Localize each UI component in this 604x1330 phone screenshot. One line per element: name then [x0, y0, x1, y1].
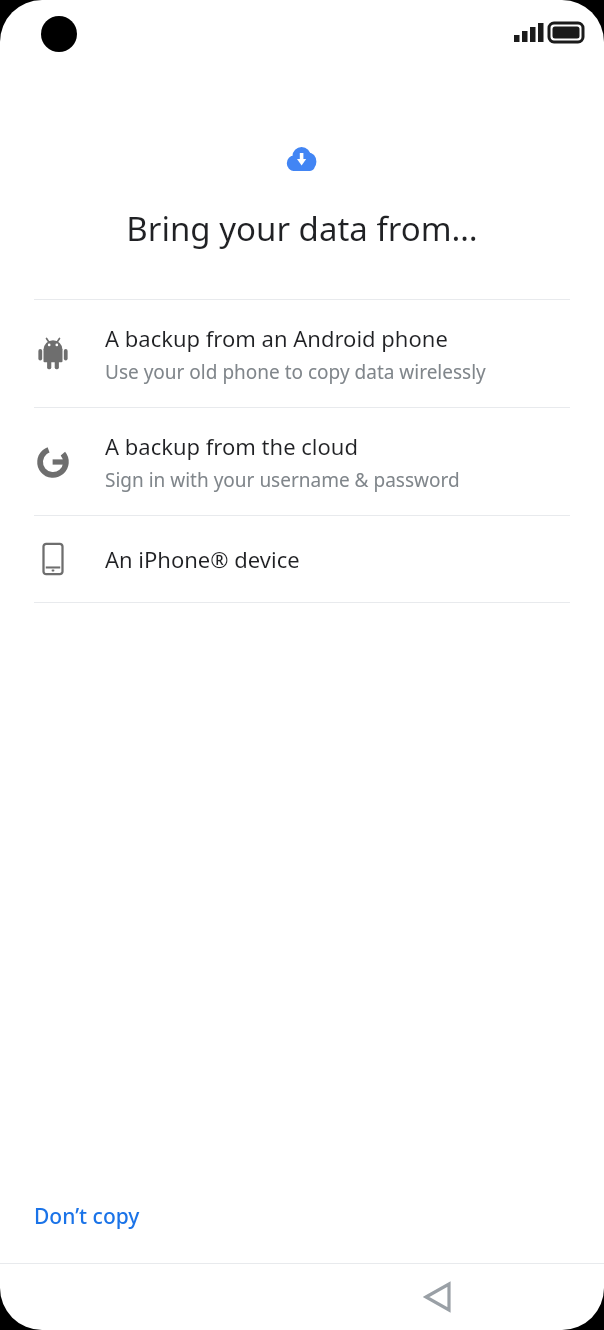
staticText: An iPhone® device	[105, 544, 300, 574]
button[interactable]: An iPhone® device	[0, 516, 604, 602]
staticText: Don’t copy	[34, 1202, 140, 1231]
staticText: Bring your data from…	[0, 206, 604, 251]
button[interactable]: Back	[409, 1267, 469, 1327]
staticText: Sign in with your username & password	[105, 467, 460, 493]
staticText: A backup from the cloud	[105, 431, 358, 461]
staticText: A backup from an Android phone	[105, 323, 448, 353]
staticText: Use your old phone to copy data wireless…	[105, 359, 486, 385]
button[interactable]: Don’t copy	[20, 1192, 154, 1241]
button[interactable]: A backup from the cloud	[0, 408, 604, 515]
button[interactable]: A backup from an Android phone	[0, 300, 604, 407]
